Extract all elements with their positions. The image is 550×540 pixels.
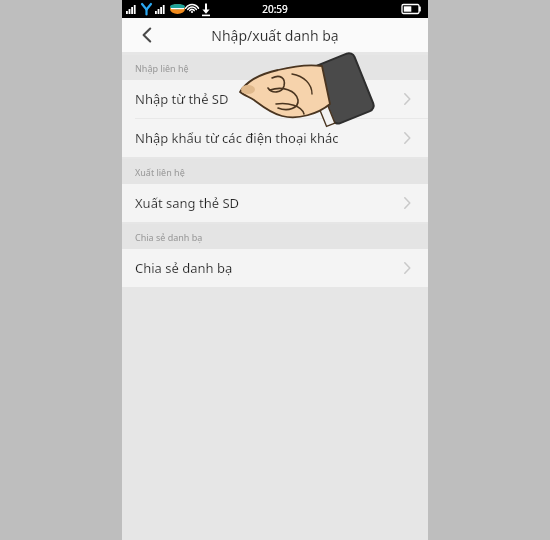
staticText: Nhập khẩu từ các điện thoại khác bbox=[135, 129, 399, 147]
staticText: Nhập liên hệ bbox=[135, 62, 189, 74]
staticText: Xuất sang thẻ SD bbox=[135, 194, 399, 212]
staticText: Xuất liên hệ bbox=[135, 166, 185, 178]
staticText: Nhập từ thẻ SD bbox=[135, 90, 399, 108]
staticText: Chia sẻ danh bạ bbox=[135, 259, 399, 277]
button[interactable]: Nhập khẩu từ các điện thoại khác bbox=[122, 119, 428, 157]
button[interactable]: Xuất sang thẻ SD bbox=[122, 184, 428, 222]
button[interactable]: Chia sẻ danh bạ bbox=[122, 249, 428, 287]
staticText: Nhập/xuất danh bạ bbox=[122, 26, 428, 45]
staticText: Chia sẻ danh bạ bbox=[135, 231, 203, 243]
button[interactable]: Nhập từ thẻ SD bbox=[122, 80, 428, 118]
button[interactable]: Back bbox=[130, 18, 164, 52]
staticText: 20:59 bbox=[122, 2, 428, 16]
